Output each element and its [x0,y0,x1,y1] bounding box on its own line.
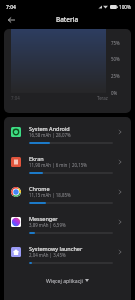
staticText: 7:04 [11,95,20,101]
staticText: Messenger [29,215,58,222]
staticText: Więcej aplikacji [46,277,83,284]
other: Ekran [118,159,122,165]
staticText: 3,89 mAh | 6,59% [29,222,66,228]
button[interactable]: Systemowy launcher [4,237,131,267]
staticText: 11,90 mAh | 6 min | 20,15% [29,162,87,168]
button[interactable]: System Android [4,117,131,147]
other: Systemowy launcher [118,249,122,255]
button[interactable]: Back [4,12,19,27]
staticText: 50% [111,56,120,62]
button[interactable]: Więcej aplikacji [4,270,131,290]
staticText: Teraz [97,95,108,101]
staticText: 11,15 mAh | 18,85% [29,192,71,198]
staticText: 0% [111,90,118,96]
staticText: Ekran [29,155,44,162]
staticText: Bateria [56,15,79,24]
button[interactable]: Ekran [4,147,131,177]
staticText: 16,58 mAh | 28,07% [29,132,71,138]
staticText: 75% [111,40,120,46]
staticText: Chrome [29,185,50,192]
staticText: 100% [119,4,131,10]
staticText: Systemowy launcher [29,245,83,252]
other: Messenger [118,219,122,225]
other: Chrome [118,189,122,195]
staticText: 25% [111,73,120,79]
other: System Android [118,129,122,135]
staticText: 7:04 [6,4,16,11]
button[interactable]: Messenger [4,207,131,237]
button[interactable]: Chrome [4,177,131,207]
staticText: 2,04 mAh | 3,45% [29,252,66,258]
staticText: System Android [29,125,70,132]
